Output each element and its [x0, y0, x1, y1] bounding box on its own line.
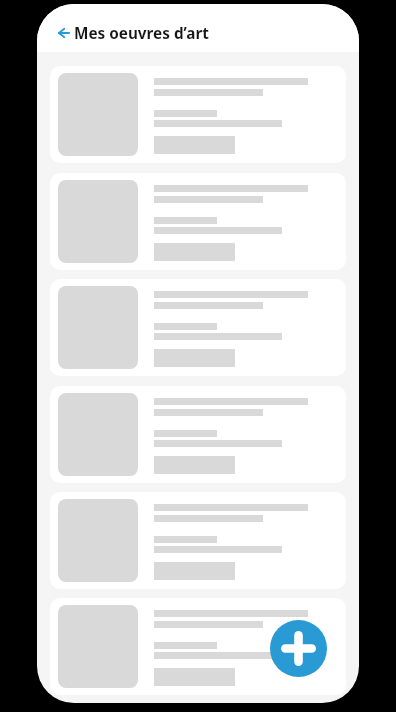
button[interactable] [50, 279, 346, 376]
button[interactable] [50, 66, 346, 163]
staticText: Mes oeuvres d’art [74, 23, 209, 44]
button[interactable]: Retour [49, 19, 79, 47]
button[interactable] [50, 598, 346, 695]
button[interactable]: Ajouter une oeuvre [270, 620, 327, 677]
button[interactable] [50, 492, 346, 589]
button[interactable] [50, 386, 346, 483]
button[interactable] [50, 173, 346, 270]
